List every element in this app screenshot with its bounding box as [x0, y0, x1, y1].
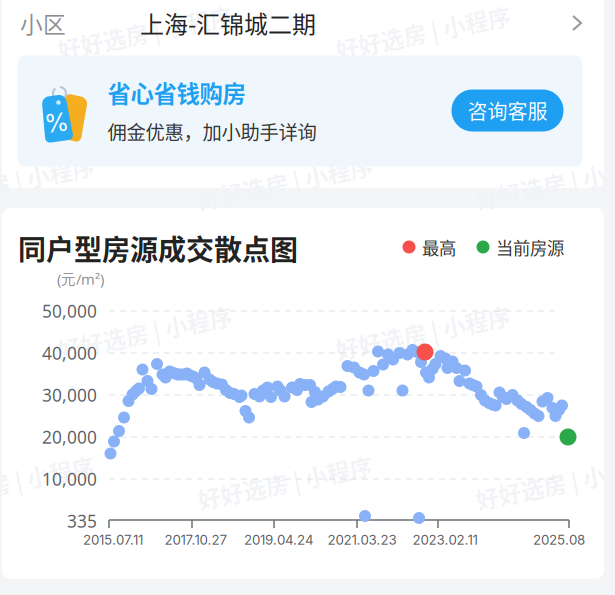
- staticText: 好好选房 | 小程序: [195, 154, 373, 186]
- staticText: 2021.03.23: [327, 532, 396, 548]
- staticText: 好好选房 | 小程序: [0, 154, 95, 186]
- staticText: 小区: [20, 7, 66, 39]
- staticText: (元/m²): [57, 269, 104, 289]
- staticText: 省心省钱购房: [107, 76, 245, 109]
- staticText: 2025.08: [533, 532, 585, 548]
- staticText: 2023.02.11: [412, 532, 477, 548]
- staticText: 40,000: [42, 341, 97, 364]
- staticText: 好好选房 | 小程序: [0, 454, 95, 486]
- staticText: 好好选房 | 小程序: [473, 154, 615, 186]
- button[interactable]: 咨询客服: [451, 89, 563, 131]
- staticText: 上海-汇锦城二期: [140, 6, 316, 40]
- staticText: %: [44, 107, 68, 138]
- staticText: 好好选房 | 小程序: [333, 304, 511, 336]
- staticText: 2015.07.11: [83, 532, 143, 548]
- staticText: 好好选房 | 小程序: [195, 454, 373, 486]
- staticText: 当前房源: [496, 234, 564, 260]
- staticText: 50,000: [42, 299, 97, 322]
- staticText: 2019.04.24: [244, 532, 314, 548]
- staticText: 20,000: [42, 425, 97, 448]
- staticText: 好好选房 | 小程序: [55, 4, 233, 36]
- staticText: 2017.10.27: [164, 532, 227, 548]
- staticText: 同户型房源成交散点图: [18, 228, 298, 268]
- staticText: 佣金优惠，加小助手详询: [107, 117, 316, 145]
- staticText: 咨询客服: [467, 96, 547, 125]
- staticText: 最高: [422, 234, 456, 260]
- staticText: 好好选房 | 小程序: [333, 4, 511, 36]
- staticText: 好好选房 | 小程序: [55, 304, 233, 336]
- staticText: 335: [67, 509, 97, 532]
- staticText: 好好选房 | 小程序: [473, 454, 615, 486]
- button[interactable]: 小区: [2, 0, 604, 46]
- staticText: 10,000: [42, 467, 97, 490]
- staticText: 30,000: [42, 383, 97, 406]
